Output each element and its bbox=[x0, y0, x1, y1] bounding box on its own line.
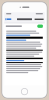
button[interactable]: Back bbox=[5, 16, 14, 22]
